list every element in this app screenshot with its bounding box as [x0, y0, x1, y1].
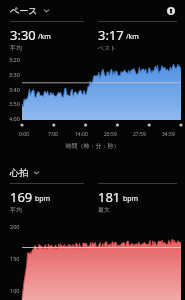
staticText: 150 — [10, 255, 20, 262]
staticText: /km — [126, 32, 139, 42]
staticText: 4:00 — [9, 115, 20, 122]
staticText: 200 — [10, 223, 20, 230]
staticText: ベスト — [98, 44, 117, 52]
button[interactable]: ペース — [10, 5, 50, 16]
staticText: 100 — [10, 287, 20, 294]
staticText: 7:00 — [48, 131, 58, 138]
staticText: 心拍 — [10, 167, 28, 178]
staticText: 169 — [10, 188, 33, 206]
staticText: 3:17 — [98, 26, 124, 44]
staticText: bpm — [35, 194, 51, 204]
staticText: bpm — [123, 194, 139, 204]
staticText: 3:50 — [9, 100, 20, 107]
button[interactable]: 169 — [10, 183, 84, 215]
staticText: 20:59 — [104, 131, 117, 138]
button[interactable]: 3:17 — [98, 21, 177, 53]
staticText: 3:20 — [9, 56, 20, 63]
button[interactable]: 心拍 — [10, 167, 40, 178]
button[interactable]: 181 — [98, 183, 177, 215]
staticText: 3:40 — [9, 86, 20, 93]
staticText: 34:59 — [162, 131, 175, 138]
staticText: 3:30 — [10, 26, 36, 44]
staticText: 0:00 — [19, 131, 29, 138]
staticText: 14:00 — [75, 131, 88, 138]
button[interactable]: 情報 — [164, 4, 178, 18]
staticText: 時間（時：分：秒） — [0, 142, 185, 150]
staticText: 最大 — [98, 206, 110, 214]
staticText: 27:59 — [133, 131, 146, 138]
button[interactable]: 3:30 — [10, 21, 84, 53]
staticText: 181 — [98, 188, 121, 206]
staticText: 平均 — [10, 44, 22, 52]
staticText: 3:30 — [9, 71, 20, 78]
staticText: /km — [38, 32, 51, 42]
staticText: ペース — [10, 5, 38, 16]
staticText: 平均 — [10, 206, 22, 214]
